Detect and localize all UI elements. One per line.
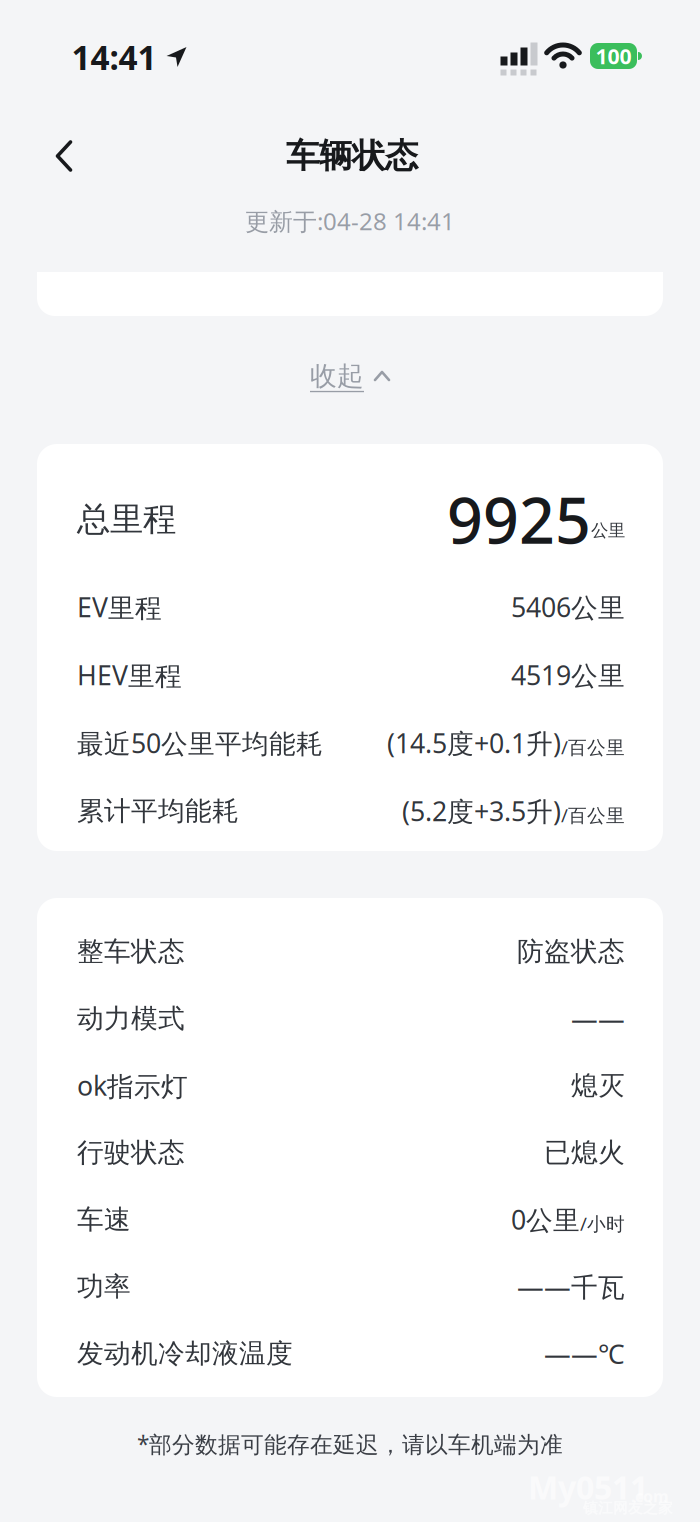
- staticText: 动力模式: [77, 1002, 185, 1035]
- staticText: 防盗状态: [517, 935, 625, 968]
- staticText: 车辆状态: [286, 135, 418, 176]
- staticText: /小时: [580, 1211, 625, 1236]
- staticText: 车速: [77, 1203, 131, 1236]
- staticText: ——℃: [544, 1336, 625, 1371]
- staticText: ——千瓦: [517, 1269, 625, 1304]
- staticText: 14:41: [71, 35, 156, 79]
- staticText: 收起: [310, 360, 364, 392]
- staticText: 0公里: [511, 1202, 580, 1237]
- staticText: 9925: [447, 478, 591, 561]
- staticText: 累计平均能耗: [77, 795, 239, 827]
- staticText: 整车状态: [77, 935, 185, 968]
- staticText: 更新于:04-28 14:41: [245, 205, 455, 237]
- staticText: HEV里程: [77, 657, 182, 693]
- staticText: 4519公里: [511, 657, 625, 693]
- staticText: (14.5度+0.1升): [387, 725, 561, 761]
- staticText: /百公里: [561, 803, 625, 827]
- staticText: 已熄火: [544, 1136, 625, 1169]
- staticText: ——: [571, 1001, 625, 1036]
- staticText: 发动机冷却液温度: [77, 1337, 293, 1370]
- staticText: 5406公里: [511, 589, 625, 625]
- staticText: ok指示灯: [77, 1068, 188, 1103]
- staticText: 功率: [77, 1270, 131, 1303]
- button[interactable]: 收起: [310, 346, 390, 406]
- staticText: 熄灭: [571, 1069, 625, 1102]
- staticText: 公里: [591, 520, 625, 541]
- staticText: 总里程: [77, 499, 176, 540]
- staticText: 行驶状态: [77, 1136, 185, 1169]
- staticText: *部分数据可能存在延迟，请以车机端为准: [137, 1429, 563, 1459]
- staticText: /百公里: [561, 735, 625, 759]
- button[interactable]: Back: [34, 126, 94, 186]
- staticText: EV里程: [77, 589, 162, 625]
- staticText: 100: [595, 42, 631, 70]
- staticText: 最近50公里平均能耗: [77, 725, 323, 761]
- staticText: (5.2度+3.5升): [402, 793, 561, 829]
